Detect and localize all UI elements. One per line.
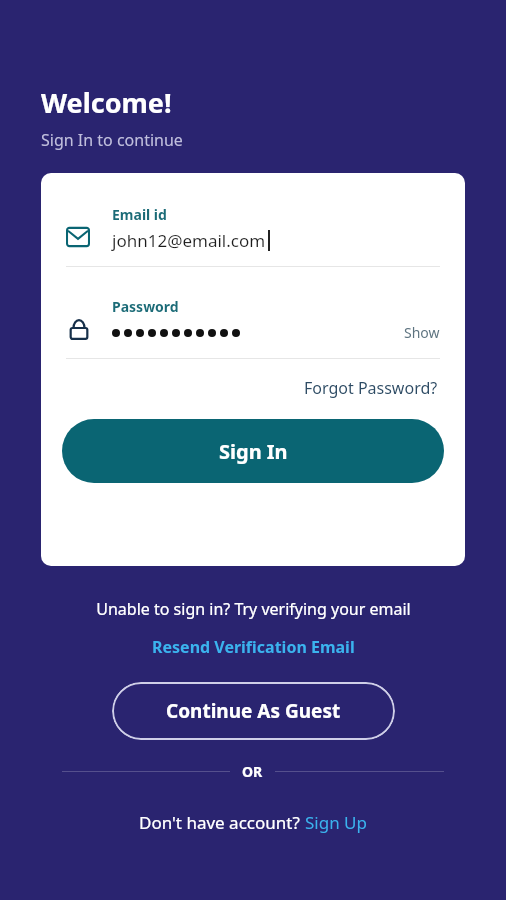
staticText: Welcome! — [41, 84, 172, 121]
staticText: john12@email.com — [112, 229, 266, 252]
button[interactable]: Resend Verification Email — [152, 636, 355, 658]
button[interactable]: Show — [404, 323, 440, 342]
other: Email — [66, 225, 90, 249]
staticText: Sign Up — [305, 811, 367, 834]
button[interactable]: Sign Up — [305, 811, 367, 834]
staticText: OR — [242, 762, 263, 781]
staticText: Password — [112, 297, 179, 316]
staticText: Forgot Password? — [304, 377, 438, 399]
button[interactable]: Continue As Guest — [112, 682, 395, 740]
staticText: Unable to sign in? Try verifying your em… — [96, 598, 411, 620]
button[interactable]: Email — [66, 205, 440, 257]
button[interactable]: Sign In — [62, 419, 444, 483]
staticText: Sign In — [219, 438, 288, 465]
staticText: Continue As Guest — [166, 698, 341, 724]
other: Password — [66, 315, 92, 341]
staticText: Sign In to continue — [41, 129, 183, 151]
staticText: Email id — [112, 205, 167, 224]
staticText: Show — [404, 323, 440, 342]
staticText: Don't have account? — [139, 811, 305, 834]
button[interactable]: Password — [66, 297, 440, 349]
button[interactable]: Forgot Password? — [304, 377, 438, 399]
staticText: Resend Verification Email — [152, 636, 355, 658]
